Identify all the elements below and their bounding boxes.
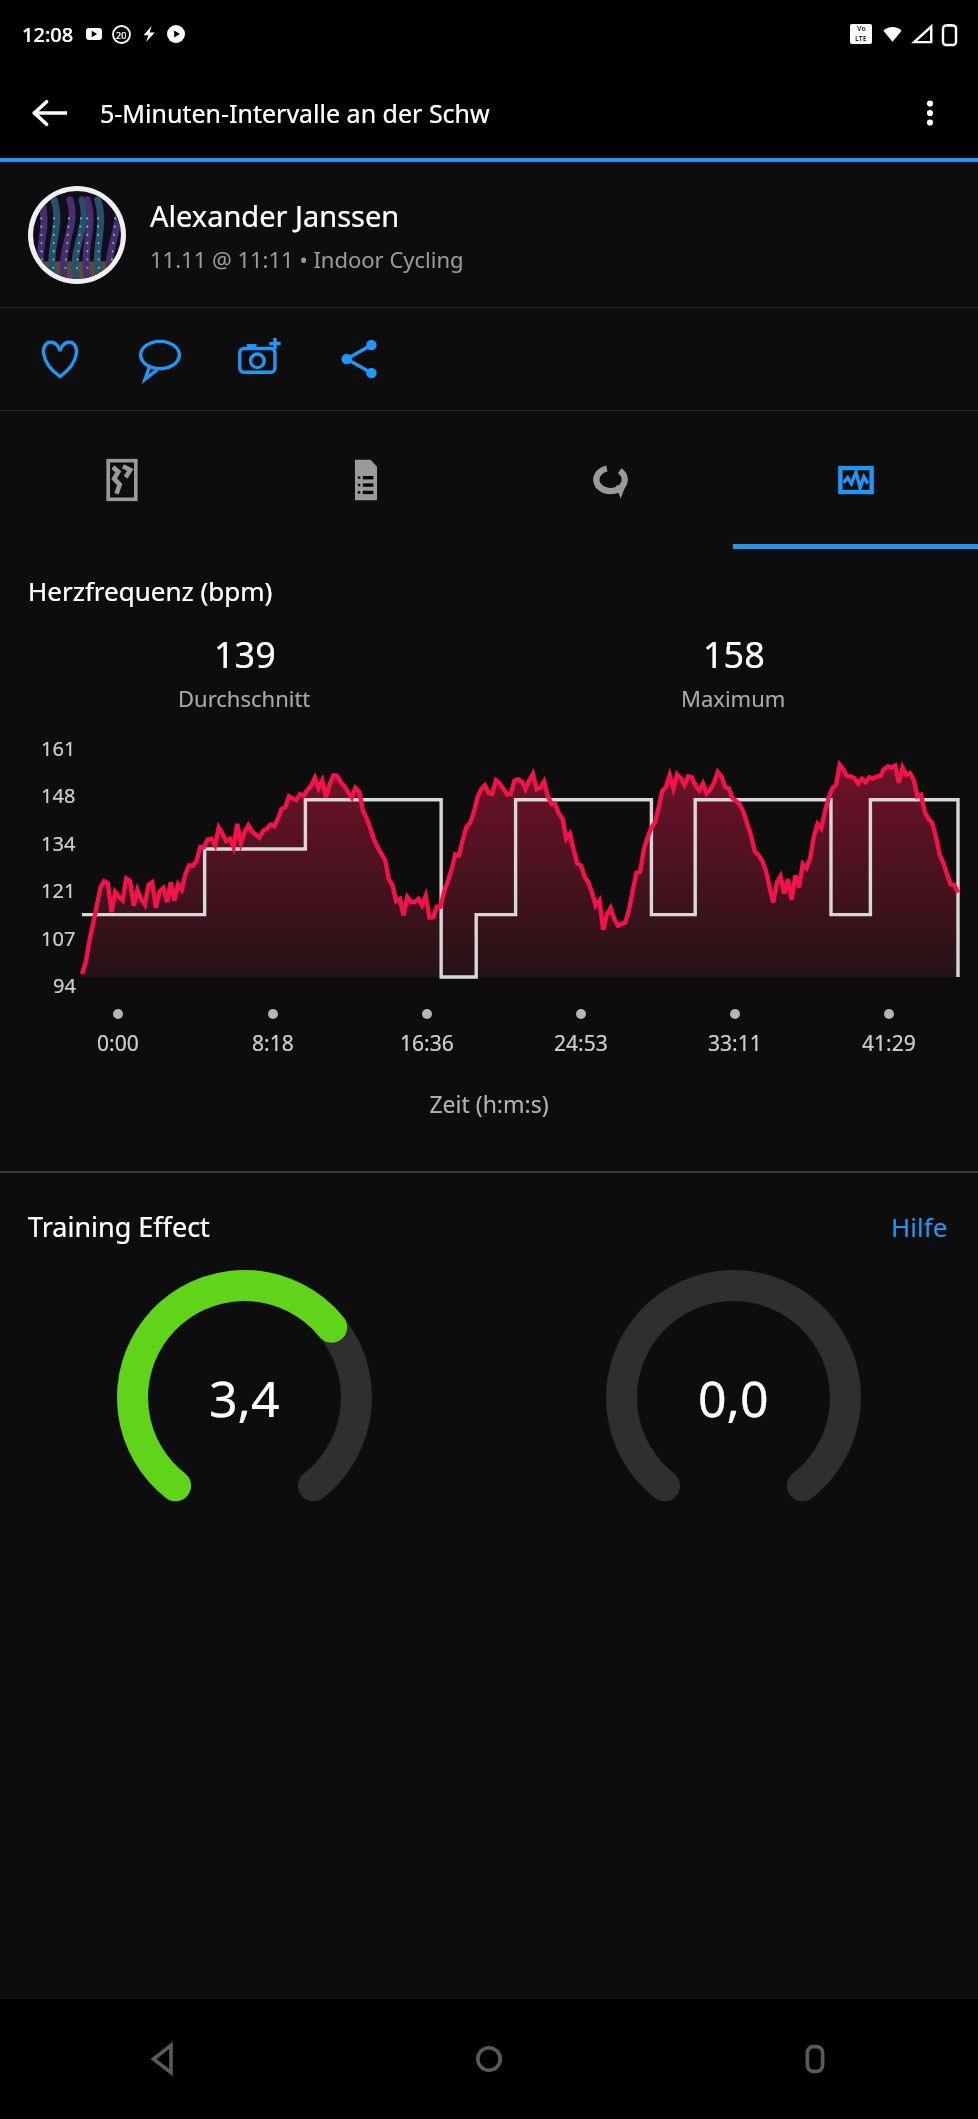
staticText: 5-Minuten-Intervalle an der Schw bbox=[100, 96, 882, 130]
staticText: Hilfe bbox=[891, 1209, 948, 1244]
button[interactable]: Like bbox=[10, 309, 110, 409]
staticText: 3,4 bbox=[209, 1364, 280, 1432]
staticText: 41:29 bbox=[862, 1029, 916, 1058]
staticText: 8:18 bbox=[252, 1029, 294, 1058]
button[interactable]: Details bbox=[244, 411, 488, 549]
button[interactable]: Laps bbox=[488, 411, 733, 549]
staticText: 107 bbox=[41, 925, 76, 952]
staticText: LTE bbox=[855, 34, 867, 44]
button[interactable]: Back bbox=[0, 68, 100, 158]
button[interactable]: Add photo bbox=[210, 309, 310, 409]
staticText: Herzfrequenz (bpm) bbox=[28, 573, 273, 608]
staticText: 121 bbox=[41, 877, 76, 904]
button[interactable]: Recents bbox=[652, 1999, 978, 2119]
button[interactable]: 0,0 bbox=[606, 1270, 861, 1525]
staticText: 12:08 bbox=[22, 21, 74, 48]
staticText: 33:11 bbox=[708, 1029, 762, 1058]
button[interactable]: Map bbox=[0, 411, 244, 549]
staticText: Alexander Janssen bbox=[150, 196, 400, 235]
button[interactable]: More options bbox=[882, 68, 978, 158]
staticText: Vo bbox=[857, 24, 866, 34]
button[interactable]: 3,4 bbox=[117, 1270, 372, 1525]
staticText: 139 bbox=[214, 630, 276, 679]
button[interactable]: Home bbox=[326, 1999, 652, 2119]
staticText: 134 bbox=[41, 830, 76, 857]
staticText: 20 bbox=[116, 29, 127, 41]
button[interactable]: Hilfe bbox=[883, 1201, 956, 1252]
button[interactable]: Share bbox=[310, 309, 410, 409]
staticText: 161 bbox=[41, 735, 76, 762]
staticText: 11.11 @ 11:11 • Indoor Cycling bbox=[150, 244, 464, 274]
staticText: 94 bbox=[53, 972, 76, 999]
staticText: Maximum bbox=[681, 683, 786, 713]
staticText: 24:53 bbox=[554, 1029, 608, 1058]
staticText: Durchschnitt bbox=[178, 683, 311, 713]
button[interactable]: Back bbox=[0, 1999, 326, 2119]
staticText: 158 bbox=[703, 630, 765, 679]
button[interactable]: Charts bbox=[733, 411, 978, 549]
staticText: 16:36 bbox=[400, 1029, 454, 1058]
staticText: 148 bbox=[41, 782, 76, 809]
staticText: 0:00 bbox=[97, 1029, 139, 1058]
button[interactable]: Comment bbox=[110, 309, 210, 409]
staticText: Training Effect bbox=[28, 1208, 210, 1245]
staticText: Zeit (h:m:s) bbox=[0, 1088, 978, 1119]
staticText: 0,0 bbox=[698, 1364, 769, 1432]
button[interactable]: Alexander Janssen bbox=[0, 162, 978, 307]
